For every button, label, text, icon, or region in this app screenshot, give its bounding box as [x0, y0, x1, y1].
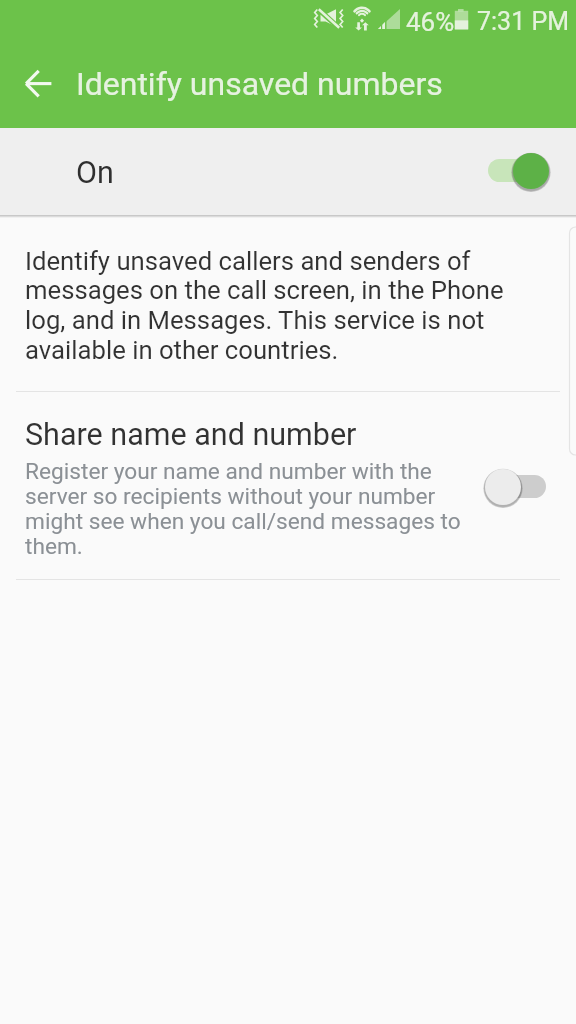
button[interactable]: Share name and number	[0, 392, 576, 579]
button[interactable]: Navigate up	[10, 54, 66, 110]
button[interactable]: Turn on	[485, 469, 561, 517]
button[interactable]: Turn off	[486, 153, 562, 201]
staticText: On	[76, 155, 114, 191]
staticText: 46%	[406, 7, 455, 37]
button[interactable]: On	[0, 128, 576, 215]
staticText: Register your name and number with the s…	[25, 458, 470, 559]
staticText: Identify unsaved callers and senders of …	[25, 246, 525, 366]
staticText: Share name and number	[25, 417, 357, 453]
staticText: 7:31 PM	[477, 7, 570, 36]
staticText: Identify unsaved numbers	[76, 65, 443, 103]
